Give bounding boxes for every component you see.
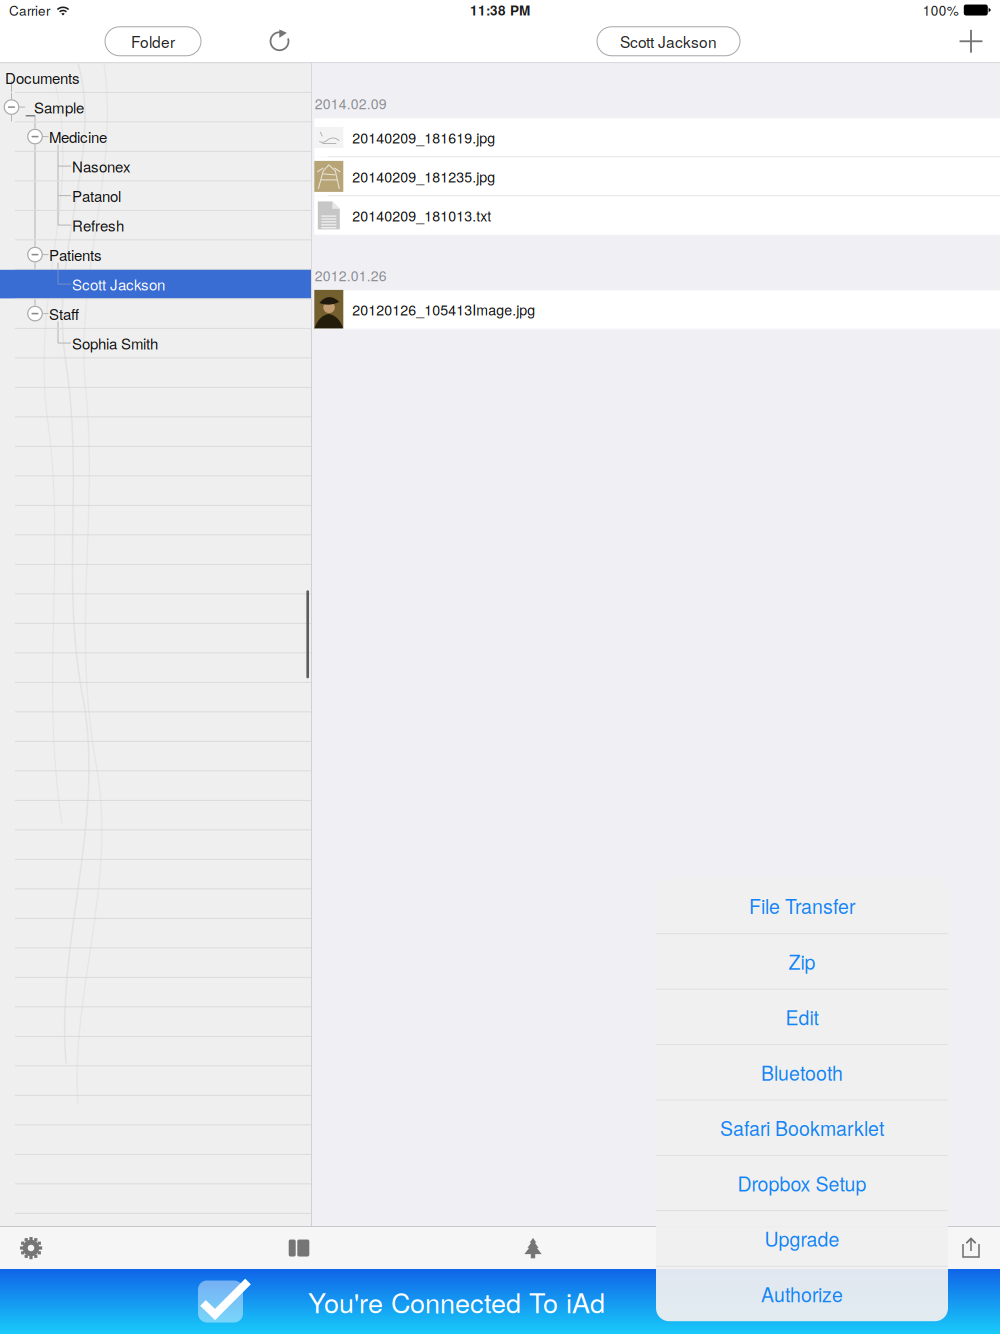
staticText: 2014.02.09	[315, 93, 387, 113]
staticText: Documents	[5, 67, 80, 88]
button[interactable]: Upgrade	[656, 1210, 948, 1266]
staticText: Zip	[788, 947, 815, 975]
button[interactable]: Documents	[0, 63, 311, 92]
button[interactable]: Zip	[656, 933, 948, 989]
button[interactable]: File Transfer	[656, 878, 948, 933]
staticText: 2012.01.26	[315, 265, 387, 285]
staticText: 20140209_181013.txt	[352, 205, 491, 225]
button[interactable]: Share	[942, 1227, 1000, 1269]
staticText: 20140209_181235.jpg	[352, 166, 495, 186]
button[interactable]: You're Connected To iAd	[0, 1269, 1000, 1334]
button[interactable]: 20140209_181013.txt	[312, 196, 1000, 235]
button[interactable]: 20140209_181235.jpg	[312, 157, 1000, 196]
button[interactable]: Toggle sidebar	[268, 1227, 330, 1269]
staticText: 11:38 PM	[470, 0, 530, 20]
button[interactable]: Medicine	[0, 122, 311, 151]
button[interactable]: 20140209_181619.jpg	[312, 118, 1000, 157]
staticText: Scott Jackson	[620, 30, 717, 52]
staticText: 100%	[923, 0, 959, 20]
staticText: Patients	[49, 244, 102, 265]
button[interactable]: Edit	[656, 989, 948, 1044]
button[interactable]: Sophia Smith	[0, 329, 311, 357]
staticText: Dropbox Setup	[737, 1169, 866, 1197]
staticText: Folder	[131, 30, 175, 52]
button[interactable]: Patients	[0, 240, 311, 269]
button[interactable]: Scott Jackson	[0, 270, 311, 298]
staticText: Bluetooth	[761, 1058, 843, 1086]
button[interactable]: Nasonex	[0, 152, 311, 180]
staticText: Upgrade	[764, 1224, 839, 1252]
staticText: Refresh	[72, 214, 124, 236]
button[interactable]: Tree view	[502, 1227, 564, 1269]
button[interactable]: 20120126_105413Image.jpg	[312, 290, 1000, 329]
button[interactable]: Scott Jackson	[597, 27, 740, 56]
button[interactable]: Dropbox Setup	[656, 1155, 948, 1210]
button[interactable]: Refresh	[270, 28, 291, 54]
staticText: Nasonex	[72, 155, 131, 177]
button[interactable]: _Sample	[0, 93, 311, 121]
staticText: Sophia Smith	[72, 332, 158, 354]
staticText: Safari Bookmarklet	[720, 1114, 884, 1142]
staticText: Carrier	[9, 0, 50, 20]
staticText: Patanol	[72, 185, 121, 206]
staticText: Staff	[49, 303, 79, 324]
button[interactable]: Safari Bookmarklet	[656, 1100, 948, 1155]
button[interactable]: Staff	[0, 299, 311, 328]
button[interactable]: Folder	[105, 27, 201, 56]
button[interactable]: Settings	[0, 1227, 62, 1269]
staticText: File Transfer	[749, 892, 855, 920]
staticText: Scott Jackson	[72, 273, 165, 295]
button[interactable]: Add	[958, 28, 984, 54]
staticText: Authorize	[761, 1280, 843, 1308]
staticText: You're Connected To iAd	[308, 1282, 605, 1321]
staticText: 20120126_105413Image.jpg	[352, 299, 535, 319]
staticText: _Sample	[26, 96, 84, 118]
staticText: Medicine	[49, 126, 107, 147]
button[interactable]: Patanol	[0, 181, 311, 210]
button[interactable]: Authorize	[656, 1266, 948, 1321]
staticText: Edit	[785, 1003, 818, 1031]
button[interactable]: Bluetooth	[656, 1044, 948, 1100]
staticText: 20140209_181619.jpg	[352, 127, 495, 147]
button[interactable]: Refresh	[0, 211, 311, 239]
